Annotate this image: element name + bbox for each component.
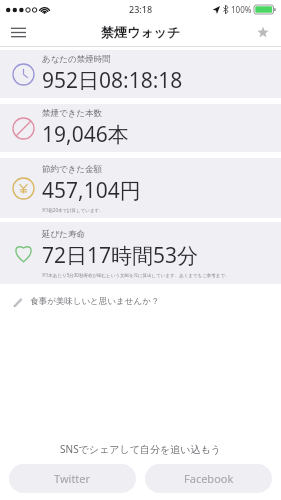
staticText: 457,104円 [42, 176, 141, 205]
staticText: ※1本あたり5分30秒寿命が縮むという文献を元に算出しています。あくまでもご参考… [42, 272, 230, 278]
staticText: 禁煙ウォッチ [101, 24, 181, 40]
staticText: 952日08:18:18 [42, 66, 183, 95]
staticText: あなたの禁煙時間 [42, 54, 111, 65]
button[interactable]: 食事が美味しいと思いませんか？ [0, 284, 281, 318]
staticText: Twitter [54, 471, 91, 486]
staticText: 食事が美味しいと思いませんか？ [30, 296, 160, 307]
button[interactable]: Menu [0, 18, 36, 46]
staticText: SNSでシェアして自分を追い込もう [0, 442, 281, 456]
staticText: 19,046本 [42, 120, 129, 149]
staticText: Facebook [184, 471, 234, 486]
staticText: 延びた寿命 [42, 229, 85, 240]
staticText: 禁煙できた本数 [42, 108, 103, 119]
button[interactable]: 節約できた金額 [0, 158, 281, 218]
button[interactable]: Twitter [9, 464, 136, 493]
button[interactable]: 禁煙できた本数 [0, 104, 281, 152]
button[interactable]: Favorite [245, 18, 281, 46]
button[interactable]: あなたの禁煙時間 [0, 50, 281, 98]
staticText: 72日17時間53分 [42, 241, 199, 270]
staticText: 節約できた金額 [42, 164, 103, 175]
button[interactable]: Facebook [145, 464, 272, 493]
button[interactable]: 延びた寿命 [0, 222, 281, 284]
staticText: 100% [231, 4, 252, 15]
staticText: ※1箱20本で計算しています。 [42, 207, 104, 213]
staticText: 23:18 [129, 3, 153, 15]
